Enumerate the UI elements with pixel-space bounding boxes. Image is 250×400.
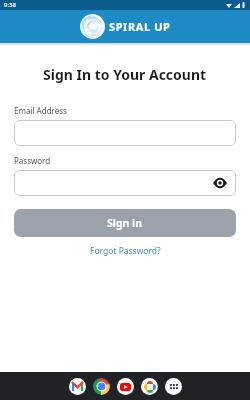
staticText: 9:38: [4, 1, 16, 9]
button[interactable]: [165, 378, 182, 395]
button[interactable]: [117, 378, 134, 395]
button[interactable]: Forgot Password?: [90, 245, 161, 257]
button[interactable]: [93, 378, 110, 395]
button[interactable]: SPIRAL UP: [80, 14, 171, 39]
staticText: Email Address: [14, 105, 67, 116]
staticText: SPIRAL UP: [109, 19, 171, 34]
button[interactable]: [69, 378, 86, 395]
button[interactable]: [141, 378, 158, 395]
staticText: Password: [14, 155, 51, 166]
button[interactable]: Sign in: [14, 209, 236, 237]
button[interactable]: [14, 170, 236, 196]
button[interactable]: [14, 120, 236, 146]
staticText: Sign In to Your Account: [43, 65, 207, 84]
staticText: Sign in: [107, 216, 143, 230]
